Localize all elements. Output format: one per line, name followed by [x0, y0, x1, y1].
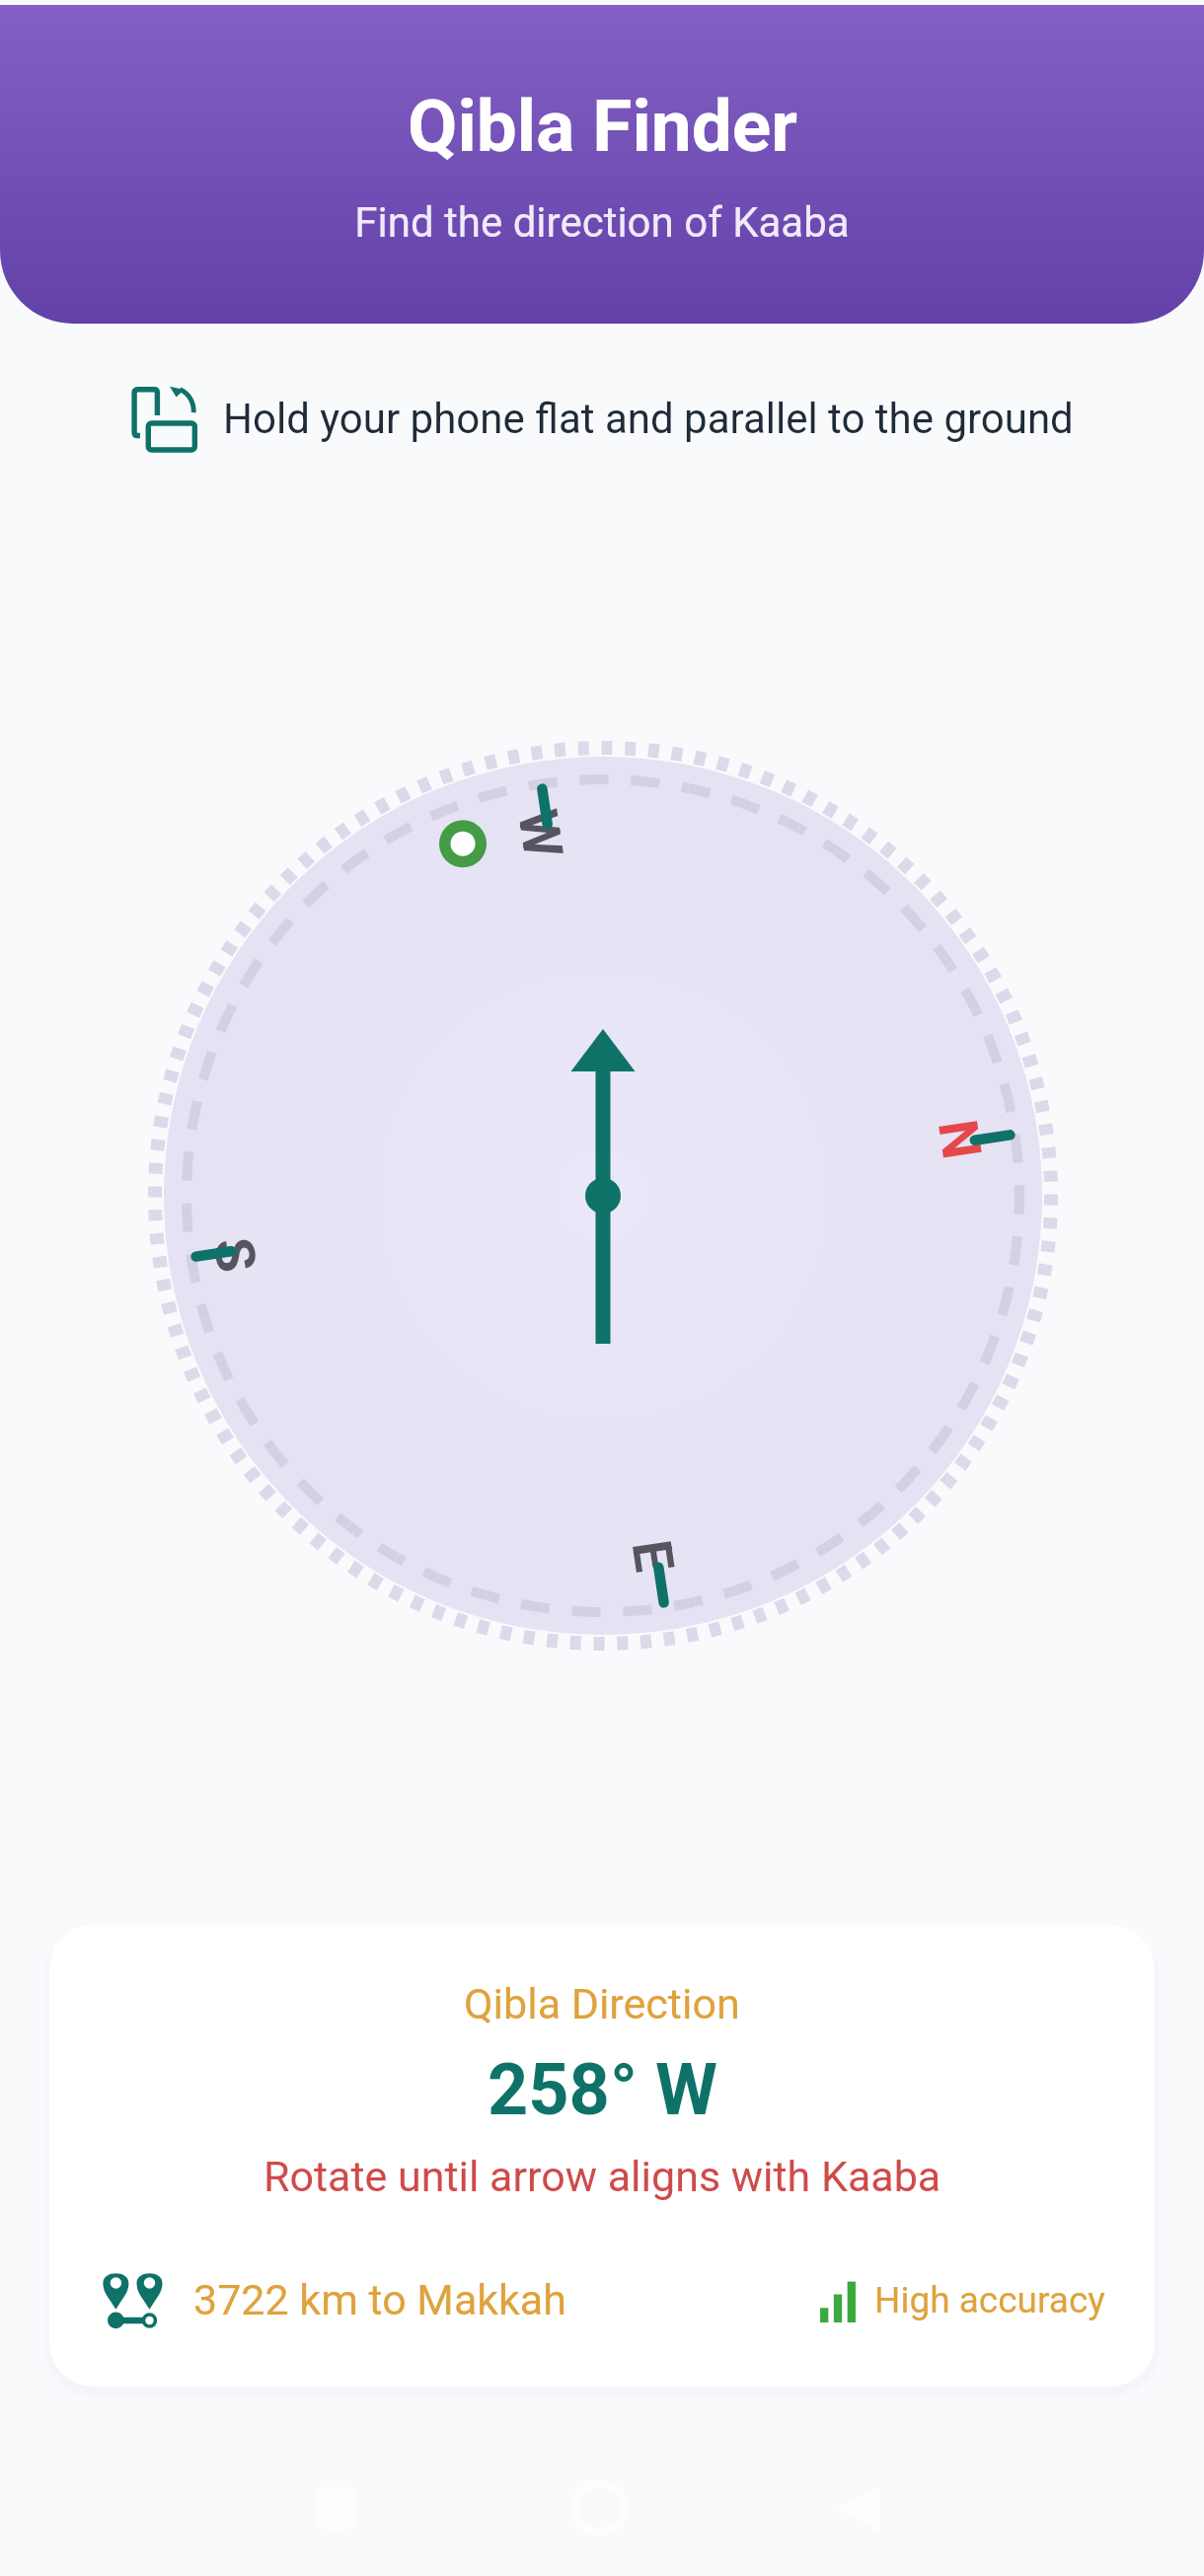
- staticText: High accuracy: [874, 2279, 1105, 2321]
- staticText: W: [505, 805, 575, 862]
- button[interactable]: Qibla Direction: [49, 1925, 1155, 2387]
- staticText: 258° W: [488, 2048, 717, 2131]
- staticText: Qibla Finder: [408, 84, 797, 169]
- staticText: 3722 km to Makkah: [193, 2275, 566, 2324]
- staticText: Hold your phone flat and parallel to the…: [223, 395, 1074, 443]
- staticText: E: [619, 1536, 686, 1576]
- staticText: Find the direction of Kaaba: [354, 198, 850, 247]
- staticText: Rotate until arrow aligns with Kaaba: [263, 2152, 941, 2201]
- staticText: N: [926, 1116, 994, 1163]
- staticText: S: [201, 1234, 269, 1276]
- staticText: Qibla Direction: [464, 1979, 740, 2028]
